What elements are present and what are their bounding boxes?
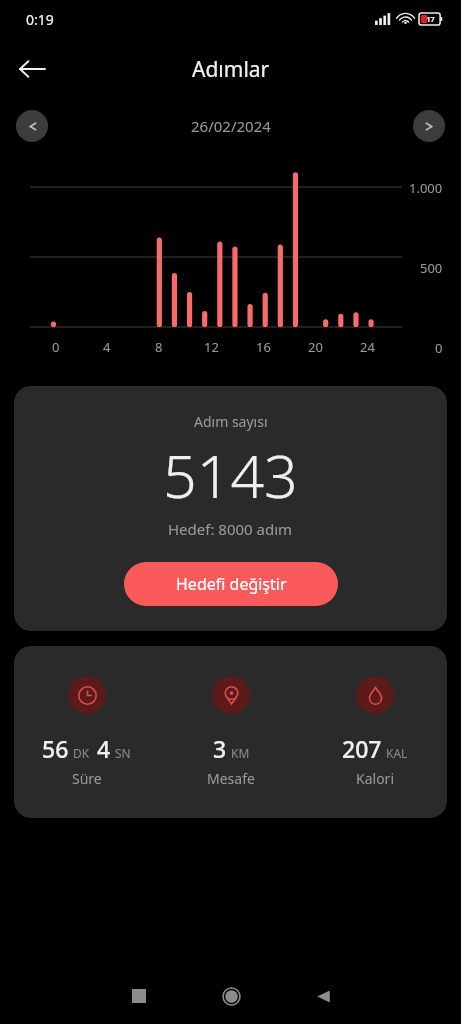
staticText: 12 xyxy=(204,338,219,356)
button[interactable]: Home xyxy=(185,968,277,1024)
staticText: Hedef: 8000 adım xyxy=(168,519,293,539)
staticText: DK xyxy=(73,745,90,761)
staticText: Süre xyxy=(72,769,102,788)
staticText: 8 xyxy=(155,338,163,356)
staticText: 16 xyxy=(256,338,271,356)
staticText: 207 xyxy=(342,733,382,764)
staticText: 20 xyxy=(308,338,323,356)
staticText: SN xyxy=(115,745,131,761)
staticText: 500 xyxy=(420,259,443,277)
button[interactable]: Next day xyxy=(413,110,445,142)
staticText: 17 xyxy=(423,15,438,24)
staticText: Kalori xyxy=(356,769,394,788)
staticText: 5143 xyxy=(163,435,298,515)
staticText: 4 xyxy=(103,338,111,356)
button[interactable]: Hedefi değiştir xyxy=(124,562,338,606)
button[interactable]: Previous day xyxy=(16,110,48,142)
button[interactable]: 3 xyxy=(159,676,303,788)
staticText: KM xyxy=(231,745,250,761)
staticText: 56 xyxy=(42,733,69,764)
staticText: 3 xyxy=(213,733,227,764)
staticText: 24 xyxy=(360,338,375,356)
button[interactable]: 56 xyxy=(14,676,159,788)
button[interactable]: Back xyxy=(8,45,56,93)
button[interactable]: 207 xyxy=(303,676,447,788)
staticText: 0 xyxy=(52,338,60,356)
staticText: Mesafe xyxy=(207,769,255,788)
staticText: 0:19 xyxy=(26,10,54,29)
staticText: 0 xyxy=(435,339,443,357)
staticText: 1.000 xyxy=(409,179,443,197)
button[interactable]: Recents xyxy=(93,968,185,1024)
button[interactable]: Adım sayısı xyxy=(14,386,447,631)
button[interactable]: Back xyxy=(277,968,369,1024)
staticText: Hedefi değiştir xyxy=(176,573,287,595)
staticText: 26/02/2024 xyxy=(191,116,271,136)
staticText: Adım sayısı xyxy=(194,412,268,431)
staticText: KAL xyxy=(386,745,408,761)
staticText: 4 xyxy=(97,733,111,764)
staticText: Adımlar xyxy=(192,55,270,84)
